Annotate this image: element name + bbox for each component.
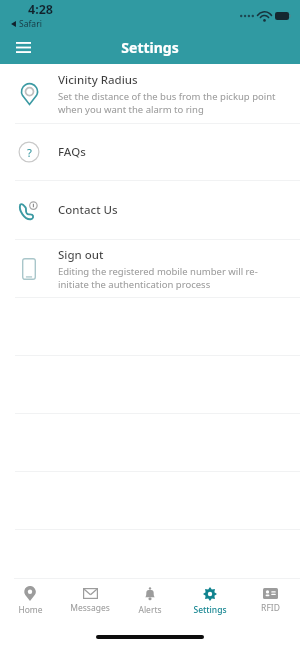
staticText: Sign out bbox=[58, 247, 104, 263]
staticText: FAQs bbox=[58, 144, 86, 160]
staticText: ? bbox=[27, 145, 32, 160]
button[interactable]: RFID bbox=[240, 579, 300, 623]
staticText: Set the distance of the bus from the pic… bbox=[58, 90, 286, 116]
staticText: Alerts bbox=[138, 604, 162, 616]
button[interactable]: Alerts bbox=[120, 579, 180, 623]
staticText: RFID bbox=[261, 602, 280, 614]
button[interactable]: Sign out bbox=[0, 240, 300, 298]
button[interactable]: Contact Us bbox=[0, 181, 300, 240]
staticText: Home bbox=[18, 604, 43, 616]
button[interactable]: Vicinity Radius bbox=[0, 64, 300, 124]
staticText: Messages bbox=[70, 602, 110, 614]
button[interactable]: Open navigation menu bbox=[10, 34, 36, 60]
staticText: Editing the registered mobile number wil… bbox=[58, 265, 286, 291]
button[interactable]: Settings bbox=[180, 579, 240, 623]
staticText: Vicinity Radius bbox=[58, 72, 138, 88]
staticText: Settings bbox=[121, 38, 179, 57]
button[interactable]: Messages bbox=[60, 579, 120, 623]
button[interactable]: Home bbox=[0, 579, 60, 623]
staticText: Contact Us bbox=[58, 202, 118, 218]
button[interactable]: ? bbox=[0, 124, 300, 181]
staticText: 4:28 bbox=[28, 1, 53, 18]
staticText: Safari bbox=[19, 18, 42, 30]
staticText: Settings bbox=[193, 604, 227, 616]
